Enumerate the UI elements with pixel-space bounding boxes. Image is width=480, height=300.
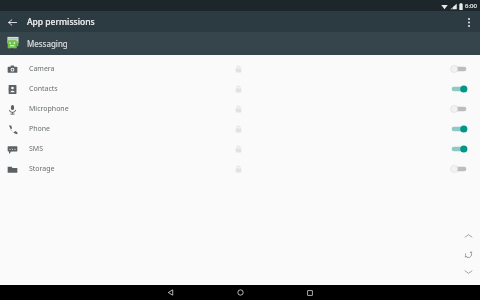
button[interactable]: Contacts xyxy=(0,79,480,99)
button[interactable]: Home xyxy=(225,285,255,300)
staticText: App permissions xyxy=(27,16,95,28)
button[interactable]: Contacts permission toggle xyxy=(446,81,472,97)
button[interactable]: Microphone xyxy=(0,99,480,119)
button[interactable]: Scroll up xyxy=(459,227,477,245)
staticText: Contacts xyxy=(29,84,58,94)
staticText: 6:00 xyxy=(465,2,477,10)
staticText: SMS xyxy=(29,144,44,154)
staticText: Messaging xyxy=(27,38,68,49)
button[interactable]: Back xyxy=(4,14,20,30)
button[interactable]: Back xyxy=(155,285,185,300)
button[interactable]: Refresh xyxy=(459,245,477,263)
button[interactable]: More options xyxy=(461,14,477,30)
button[interactable]: Storage xyxy=(0,159,480,179)
button[interactable]: Camera xyxy=(0,59,480,79)
button[interactable]: Camera permission toggle xyxy=(446,61,472,77)
button[interactable]: Recent apps xyxy=(295,285,325,300)
staticText: Storage xyxy=(29,164,55,174)
button[interactable]: Scroll down xyxy=(459,263,477,281)
staticText: Camera xyxy=(29,64,55,74)
button[interactable]: Microphone permission toggle xyxy=(446,101,472,117)
button[interactable]: SMS xyxy=(0,139,480,159)
button[interactable]: Storage permission toggle xyxy=(446,161,472,177)
staticText: Phone xyxy=(29,124,51,134)
button[interactable]: Messaging xyxy=(0,32,480,55)
button[interactable]: SMS permission toggle xyxy=(446,141,472,157)
button[interactable]: Phone permission toggle xyxy=(446,121,472,137)
button[interactable]: Phone xyxy=(0,119,480,139)
staticText: Microphone xyxy=(29,104,69,114)
